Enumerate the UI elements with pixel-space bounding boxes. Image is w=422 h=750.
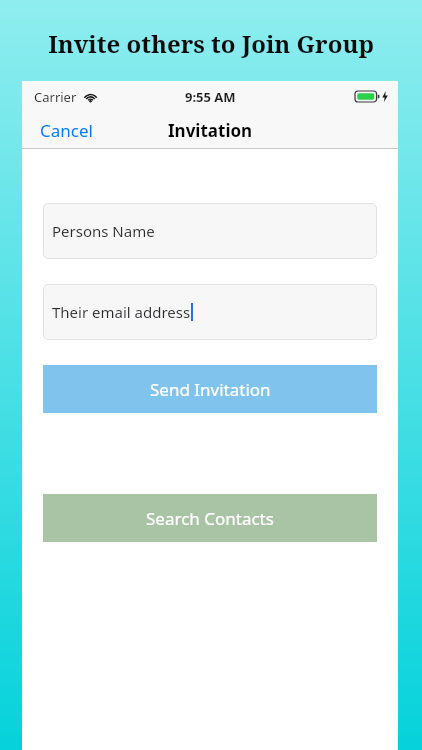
staticText: Invite others to Join Group <box>0 27 422 60</box>
staticText: Their email address <box>52 302 191 322</box>
other: Battery full <box>355 91 379 102</box>
other: Wi-Fi signal <box>83 91 98 103</box>
staticText: Invitation <box>168 119 253 142</box>
staticText: 9:55 AM <box>185 88 236 106</box>
staticText: Search Contacts <box>146 507 274 530</box>
button[interactable]: Persons Name <box>43 203 377 259</box>
staticText: Send Invitation <box>150 378 271 401</box>
button[interactable]: Search Contacts <box>43 494 377 542</box>
staticText: Cancel <box>40 119 93 142</box>
button[interactable]: Their email address <box>43 284 377 340</box>
staticText: Carrier <box>34 88 77 106</box>
staticText: Persons Name <box>52 221 155 241</box>
button[interactable]: Cancel <box>22 113 111 148</box>
button[interactable]: Send Invitation <box>43 365 377 413</box>
